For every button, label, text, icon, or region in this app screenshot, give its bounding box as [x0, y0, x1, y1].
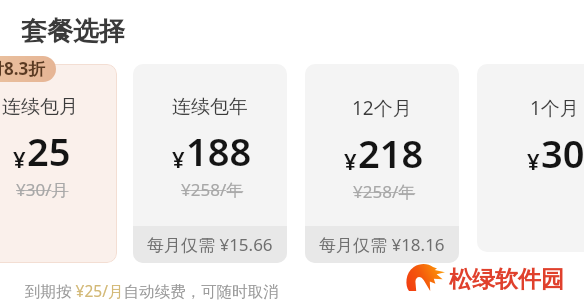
staticText: 30	[541, 127, 584, 179]
staticText: ¥258/年	[181, 178, 244, 201]
button[interactable]: 1个月	[477, 64, 584, 252]
staticText: 每月仅需 ¥18.16	[319, 233, 445, 256]
other: 松绿软件园 logo	[405, 263, 445, 291]
staticText: ¥	[344, 146, 357, 176]
staticText: 连续包月	[2, 95, 78, 119]
staticText: 12个月	[352, 95, 412, 121]
staticText: 188	[186, 125, 252, 177]
staticText: 到期按 ¥25/月自动续费，可随时取消	[25, 280, 279, 301]
staticText: ¥	[13, 144, 26, 174]
staticText: ¥	[172, 144, 185, 174]
staticText: 25	[27, 125, 71, 177]
button[interactable]: 12个月	[305, 64, 459, 263]
staticText: ¥30/月	[16, 178, 69, 201]
staticText: 套餐选择	[21, 15, 125, 48]
staticText: 1个月	[530, 95, 579, 121]
staticText: ¥258/年	[353, 180, 416, 203]
button[interactable]: 连续包年	[133, 64, 287, 263]
staticText: 连续包年	[172, 95, 248, 119]
staticText: 每月仅需 ¥15.66	[147, 233, 273, 256]
button[interactable]: 连续包月	[0, 64, 117, 263]
staticText: 首付8.3折	[0, 57, 46, 80]
staticText: ¥	[527, 146, 540, 176]
button[interactable]: 首付8.3折	[0, 56, 56, 82]
staticText: 218	[358, 127, 424, 179]
staticText: 松绿软件园	[449, 265, 564, 294]
